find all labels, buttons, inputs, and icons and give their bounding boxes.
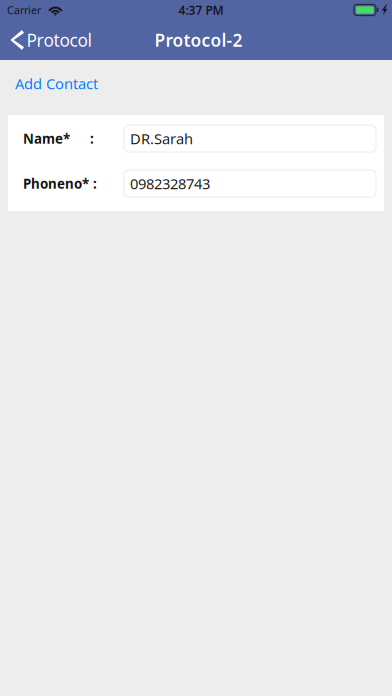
staticText: :	[93, 175, 97, 192]
staticText: Protocol	[27, 28, 92, 51]
button[interactable]: Add Contact	[0, 62, 114, 113]
staticText: Carrier	[7, 3, 41, 17]
staticText: Name*	[23, 130, 70, 147]
staticText: DR.Sarah	[130, 129, 193, 148]
button[interactable]: Protocol	[0, 20, 100, 60]
staticText: :	[90, 130, 94, 147]
staticText: Add Contact	[15, 74, 98, 93]
staticText: Protocol-2	[154, 28, 242, 51]
staticText: 4:37 PM	[178, 2, 223, 18]
staticText: 0982328743	[130, 174, 210, 193]
staticText: Phoneno*	[23, 175, 89, 192]
